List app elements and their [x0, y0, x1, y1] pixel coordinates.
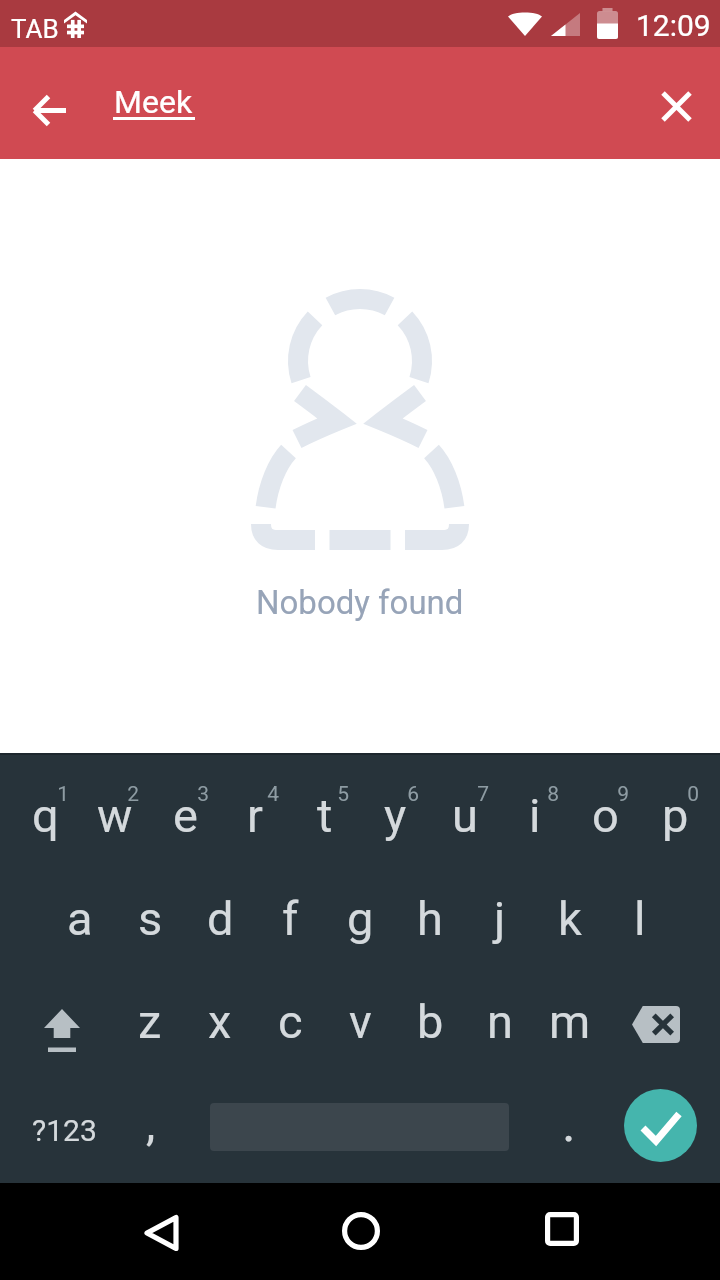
staticText: ?123 [32, 1113, 97, 1148]
staticText: x [208, 994, 232, 1049]
staticText: . [562, 1093, 576, 1154]
staticText: t [317, 788, 333, 843]
staticText: n [487, 994, 513, 1049]
staticText: , [146, 1096, 156, 1151]
staticText: g [347, 891, 374, 946]
button[interactable]: v [325, 970, 395, 1073]
staticText: r [247, 788, 263, 843]
button[interactable]: Back [20, 81, 78, 139]
button[interactable]: j [465, 867, 535, 970]
staticText: m [549, 994, 591, 1049]
staticText: a [67, 891, 93, 946]
staticText: s [138, 891, 163, 946]
button[interactable]: d [185, 867, 255, 970]
staticText: 8 [547, 782, 559, 807]
button[interactable]: u [430, 764, 500, 867]
button[interactable]: e [150, 764, 220, 867]
staticText: u [452, 788, 478, 843]
staticText: k [558, 891, 582, 946]
button[interactable]: o [570, 764, 640, 867]
staticText: i [529, 788, 541, 843]
button[interactable]: Recents [517, 1184, 607, 1274]
button[interactable]: k [535, 867, 605, 970]
staticText: c [278, 994, 303, 1049]
staticText: b [417, 994, 444, 1049]
button[interactable]: Space [200, 1073, 520, 1176]
staticText: 4 [267, 782, 279, 807]
button[interactable]: f [255, 867, 325, 970]
staticText: e [173, 788, 198, 843]
staticText: j [494, 891, 506, 946]
button[interactable]: s [115, 867, 185, 970]
button[interactable]: ?123 [0, 1073, 128, 1176]
staticText: 2 [127, 782, 139, 807]
button[interactable]: n [465, 970, 535, 1073]
button[interactable]: Close [648, 78, 704, 134]
staticText: 7 [477, 782, 489, 807]
button[interactable]: z [115, 970, 185, 1073]
staticText: h [417, 891, 443, 946]
staticText: Meek [114, 83, 193, 121]
button[interactable]: Backspace [605, 970, 720, 1073]
button[interactable]: q [10, 764, 80, 867]
staticText: q [32, 788, 59, 843]
button[interactable]: h [395, 867, 465, 970]
staticText: z [138, 994, 162, 1049]
staticText: Nobody found [256, 583, 464, 622]
button[interactable]: m [535, 970, 605, 1073]
button[interactable]: t [290, 764, 360, 867]
staticText: w [97, 788, 133, 843]
button[interactable]: w [80, 764, 150, 867]
staticText: 3 [197, 782, 209, 807]
button[interactable]: g [325, 867, 395, 970]
staticText: 0 [687, 782, 699, 807]
staticText: l [634, 891, 646, 946]
button[interactable]: . [520, 1073, 620, 1176]
staticText: 1 [57, 782, 69, 807]
staticText: v [349, 994, 372, 1049]
staticText: y [384, 788, 407, 843]
staticText: 12:09 [636, 8, 711, 43]
button[interactable]: l [605, 867, 675, 970]
staticText: 6 [407, 782, 419, 807]
button[interactable]: p [640, 764, 710, 867]
staticText: o [592, 788, 619, 843]
button[interactable]: Back [116, 1188, 206, 1278]
button[interactable]: y [360, 764, 430, 867]
button[interactable]: i [500, 764, 570, 867]
button[interactable]: c [255, 970, 325, 1073]
staticText: 5 [337, 782, 349, 807]
button[interactable]: , [128, 1073, 200, 1176]
staticText: f [282, 891, 299, 946]
staticText: p [662, 788, 689, 843]
staticText: 9 [617, 782, 629, 807]
staticText: TAB [11, 14, 59, 44]
button[interactable]: r [220, 764, 290, 867]
button[interactable]: Shift [0, 970, 115, 1073]
staticText: d [207, 891, 234, 946]
button[interactable]: x [185, 970, 255, 1073]
button[interactable]: b [395, 970, 465, 1073]
button[interactable]: a [45, 867, 115, 970]
button[interactable]: Home [316, 1186, 406, 1276]
button[interactable]: Meek [108, 65, 208, 137]
button[interactable]: Enter [620, 1073, 720, 1176]
